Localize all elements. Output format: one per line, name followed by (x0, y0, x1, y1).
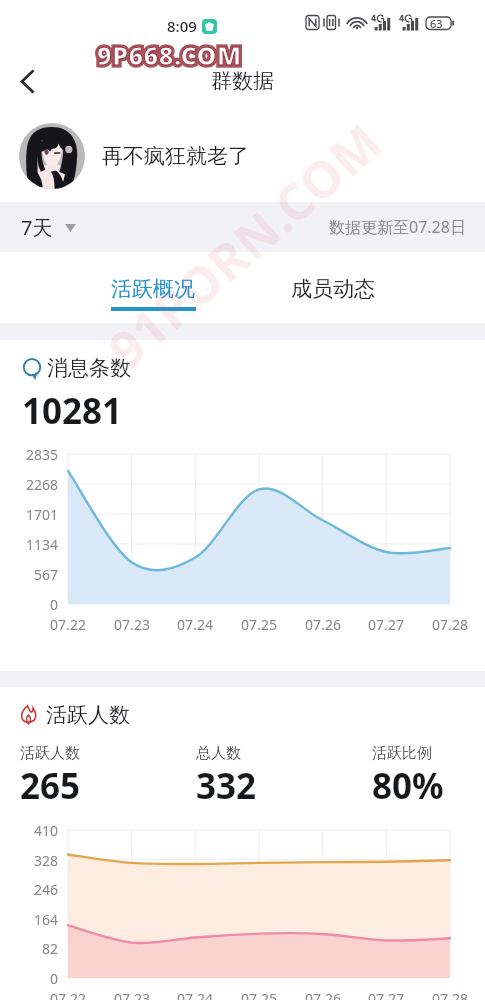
staticText: 2268 (25, 475, 58, 494)
staticText: 2835 (25, 445, 58, 464)
staticText: 0 (49, 969, 58, 988)
staticText: 07.25 (241, 989, 277, 1000)
staticText: 07.25 (241, 615, 277, 634)
staticText: 07.23 (114, 989, 150, 1000)
button[interactable]: 活跃概况 (32, 252, 274, 323)
staticText: 10281 (22, 387, 123, 435)
staticText: 63 (430, 16, 443, 31)
staticText: 1134 (25, 535, 58, 554)
staticText: 7天 (21, 214, 53, 241)
staticText: 07.27 (368, 989, 404, 1000)
staticText: 9P668.COM (97, 38, 242, 72)
staticText: 07.23 (114, 615, 150, 634)
staticText: 1701 (25, 505, 58, 524)
button[interactable]: Back (7, 61, 47, 101)
staticText: 82 (41, 939, 58, 958)
button[interactable]: 活跃人数 (20, 744, 80, 763)
staticText: 总人数 (196, 744, 241, 763)
staticText: 07.26 (305, 989, 341, 1000)
button[interactable]: 总人数 (196, 744, 241, 763)
staticText: 群数据 (211, 68, 274, 94)
staticText: 07.27 (368, 615, 404, 634)
button[interactable]: 活跃比例 (372, 744, 432, 763)
staticText: 567 (33, 565, 58, 584)
staticText: 07.24 (177, 615, 213, 634)
staticText: 164 (33, 910, 58, 929)
staticText: 活跃人数 (20, 744, 80, 763)
button[interactable]: 再不疯狂就老了 (0, 110, 485, 202)
staticText: 0 (49, 595, 58, 614)
staticText: 07.22 (50, 989, 86, 1000)
staticText: 成员动态 (291, 276, 375, 302)
staticText: 265 (20, 762, 81, 810)
staticText: 消息条数 (47, 355, 131, 381)
staticText: 246 (33, 880, 58, 899)
staticText: 80% (372, 762, 444, 810)
button[interactable]: 成员动态 (222, 252, 444, 323)
staticText: 07.26 (305, 615, 341, 634)
staticText: 9P668.COM (97, 38, 242, 72)
staticText: 332 (196, 762, 257, 810)
staticText: 活跃人数 (46, 702, 130, 728)
staticText: 9P668.COM (97, 38, 242, 72)
staticText: 活跃比例 (372, 744, 432, 763)
staticText: 07.22 (50, 615, 86, 634)
staticText: 91PORN.COM (94, 108, 396, 383)
staticText: 07.28 (432, 615, 468, 634)
staticText: 数据更新至07.28日 (329, 216, 466, 238)
staticText: 328 (33, 851, 58, 870)
staticText: 07.24 (177, 989, 213, 1000)
button[interactable]: 7天 (13, 208, 84, 247)
staticText: 再不疯狂就老了 (102, 143, 249, 169)
staticText: 活跃概况 (111, 276, 195, 302)
staticText: 410 (33, 821, 58, 840)
staticText: 07.28 (432, 989, 468, 1000)
staticText: 8:09 (167, 16, 197, 36)
